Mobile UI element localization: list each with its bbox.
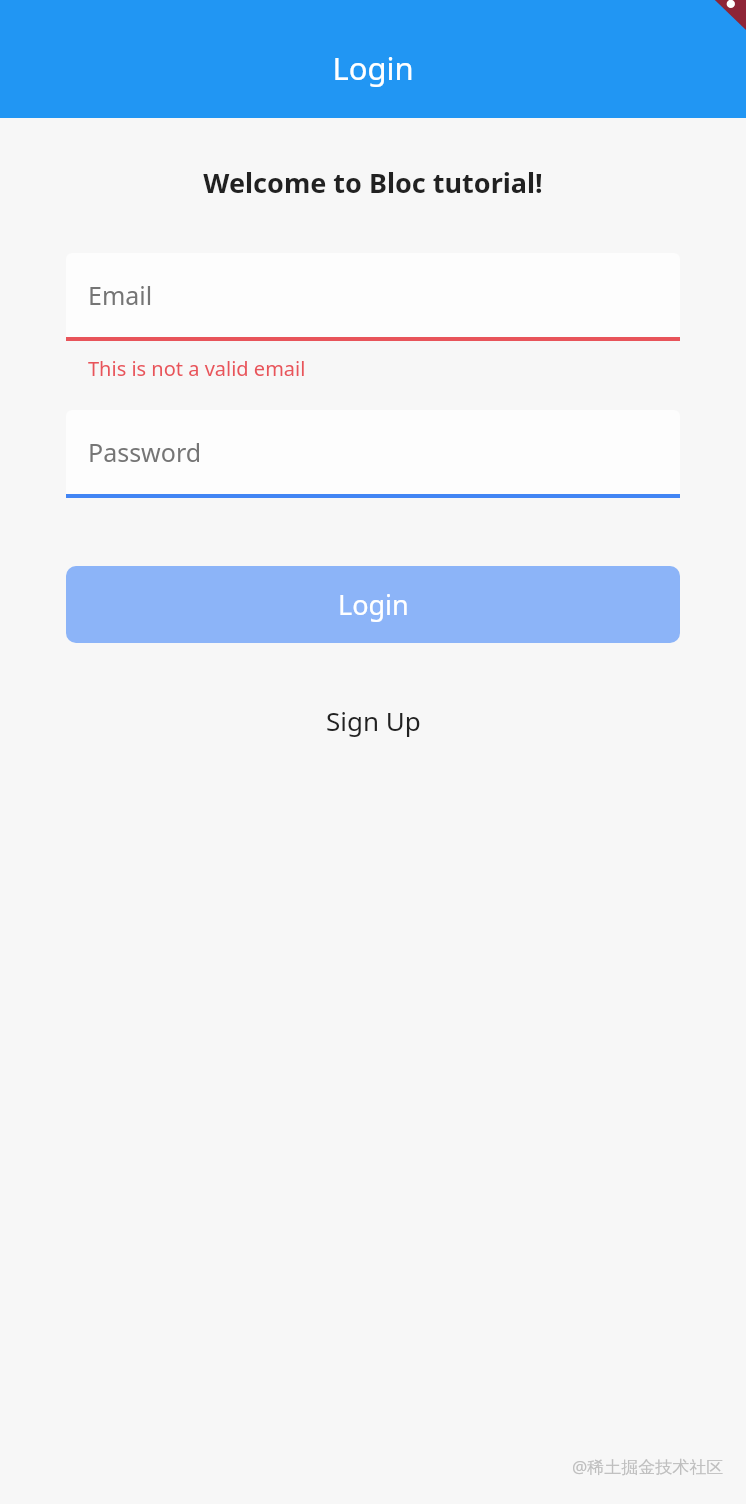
button[interactable]: Email: [66, 253, 680, 337]
staticText: This is not a valid email: [88, 355, 306, 382]
other: Badge: [708, 0, 746, 30]
button[interactable]: Login: [66, 566, 680, 643]
staticText: Email: [88, 278, 153, 312]
staticText: @稀土掘金技术社区: [572, 1455, 724, 1478]
staticText: Login: [338, 586, 409, 623]
button[interactable]: Sign Up: [308, 695, 439, 746]
staticText: Welcome to Bloc tutorial!: [0, 164, 746, 201]
staticText: Sign Up: [326, 703, 421, 738]
staticText: Password: [88, 435, 202, 469]
button[interactable]: Password: [66, 410, 680, 494]
staticText: Login: [332, 47, 414, 89]
